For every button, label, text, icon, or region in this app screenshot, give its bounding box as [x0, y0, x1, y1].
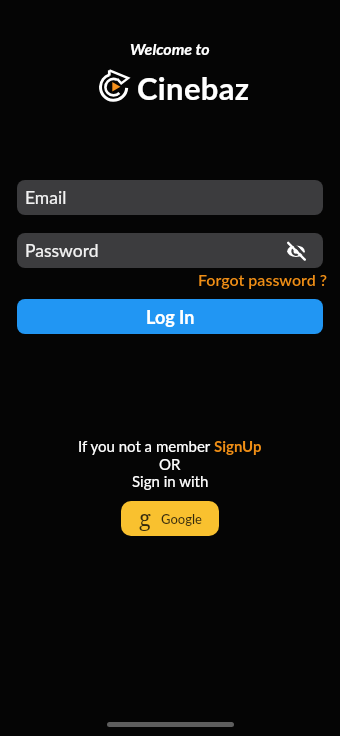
button[interactable]: Forgot password ?: [198, 270, 327, 289]
button[interactable]: Email: [17, 180, 323, 215]
staticText: Password: [25, 240, 99, 261]
staticText: Email: [25, 187, 67, 208]
staticText: Sign in with: [132, 472, 209, 490]
button[interactable]: [285, 241, 307, 261]
staticText: Google: [161, 511, 202, 527]
staticText: If you not a member: [78, 437, 214, 455]
staticText: Cinebaz: [137, 69, 250, 106]
staticText: Log In: [146, 306, 195, 328]
button[interactable]: Password: [17, 233, 323, 268]
button[interactable]: g: [121, 501, 219, 536]
button[interactable]: SignUp: [214, 437, 262, 455]
button[interactable]: Log In: [17, 299, 323, 334]
staticText: OR: [159, 455, 181, 473]
staticText: Welcome to: [130, 39, 210, 58]
staticText: g: [139, 502, 151, 532]
